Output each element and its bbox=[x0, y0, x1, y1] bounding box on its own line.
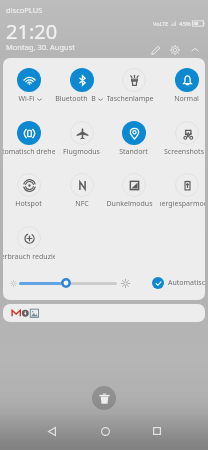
staticText: Hotspot bbox=[15, 199, 42, 209]
staticText: Automatisch bbox=[168, 278, 205, 288]
staticText: Wi-Fi bbox=[18, 94, 35, 104]
button[interactable]: Settings bbox=[165, 40, 185, 60]
button[interactable]: Brightness slider bbox=[61, 278, 71, 288]
staticText: NFC bbox=[75, 199, 89, 209]
button[interactable]: Datenverbrauch reduzieren bbox=[3, 226, 55, 264]
staticText: Flugmodus bbox=[63, 147, 100, 157]
staticText: Normal bbox=[174, 94, 199, 104]
button[interactable]: Automatisch bbox=[152, 277, 205, 289]
button[interactable]: Recent apps bbox=[145, 419, 169, 443]
button[interactable]: Automatisch drehen bbox=[3, 121, 55, 159]
button[interactable]: Flugmodus bbox=[55, 121, 108, 159]
staticText: 21:20 bbox=[6, 18, 58, 45]
staticText: Automatisch drehen bbox=[3, 147, 55, 157]
button[interactable]: Taschenlampe bbox=[107, 68, 160, 106]
button[interactable]: NFC bbox=[55, 173, 108, 211]
button[interactable]: Standort bbox=[107, 121, 160, 159]
staticText: Standort bbox=[119, 147, 148, 157]
button[interactable]: Normal bbox=[160, 68, 205, 106]
button[interactable]: Collapse panel bbox=[185, 40, 205, 60]
staticText: Screenshots bbox=[164, 147, 204, 157]
staticText: Bluetooth B bbox=[55, 94, 96, 104]
staticText: Taschenlampe bbox=[107, 94, 154, 104]
button[interactable]: Wi-Fi bbox=[3, 68, 55, 106]
staticText: Datenverbrauch reduzieren bbox=[3, 252, 55, 262]
button[interactable]: Home bbox=[93, 419, 117, 443]
button[interactable]: Hotspot bbox=[3, 173, 55, 211]
button[interactable]: Dunkelmodus bbox=[107, 173, 160, 211]
staticText: VoLTE bbox=[153, 20, 169, 27]
button[interactable]: Clear all notifications bbox=[92, 386, 116, 410]
staticText: Montag, 30. August bbox=[6, 42, 75, 52]
staticText: 45% bbox=[179, 20, 191, 28]
button[interactable] bbox=[3, 304, 205, 322]
button[interactable]: Back bbox=[40, 419, 64, 443]
button[interactable]: Bluetooth B bbox=[55, 68, 108, 106]
button[interactable]: Energiesparmodus bbox=[160, 173, 205, 211]
button[interactable]: Screenshots bbox=[160, 121, 205, 159]
staticText: discoPLUS bbox=[6, 5, 43, 15]
staticText: Dunkelmodus bbox=[107, 199, 153, 209]
button[interactable]: Edit quick settings bbox=[146, 40, 166, 60]
staticText: Energiesparmodus bbox=[160, 199, 205, 209]
